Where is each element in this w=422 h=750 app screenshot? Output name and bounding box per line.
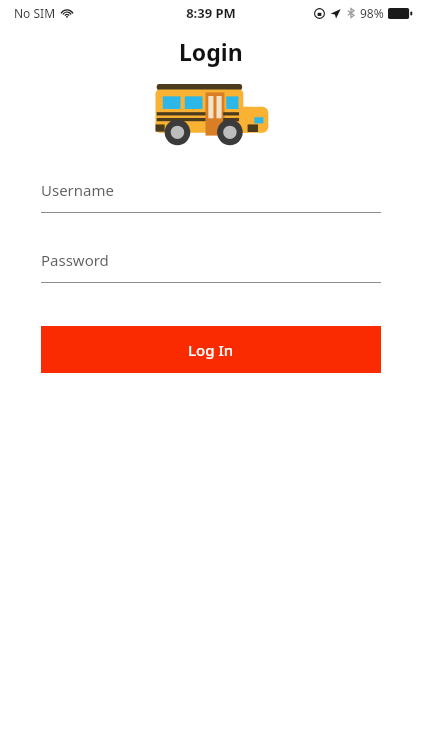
staticText: Password (41, 250, 109, 270)
button[interactable]: Username (41, 180, 381, 213)
staticText: Log In (188, 340, 234, 360)
staticText: 98% (360, 5, 384, 21)
button[interactable]: Password (41, 250, 381, 283)
staticText: Username (41, 180, 114, 200)
staticText: 8:39 PM (186, 4, 236, 22)
button[interactable]: Log In (41, 326, 381, 373)
staticText: No SIM (14, 5, 56, 21)
staticText: Login (179, 36, 243, 67)
